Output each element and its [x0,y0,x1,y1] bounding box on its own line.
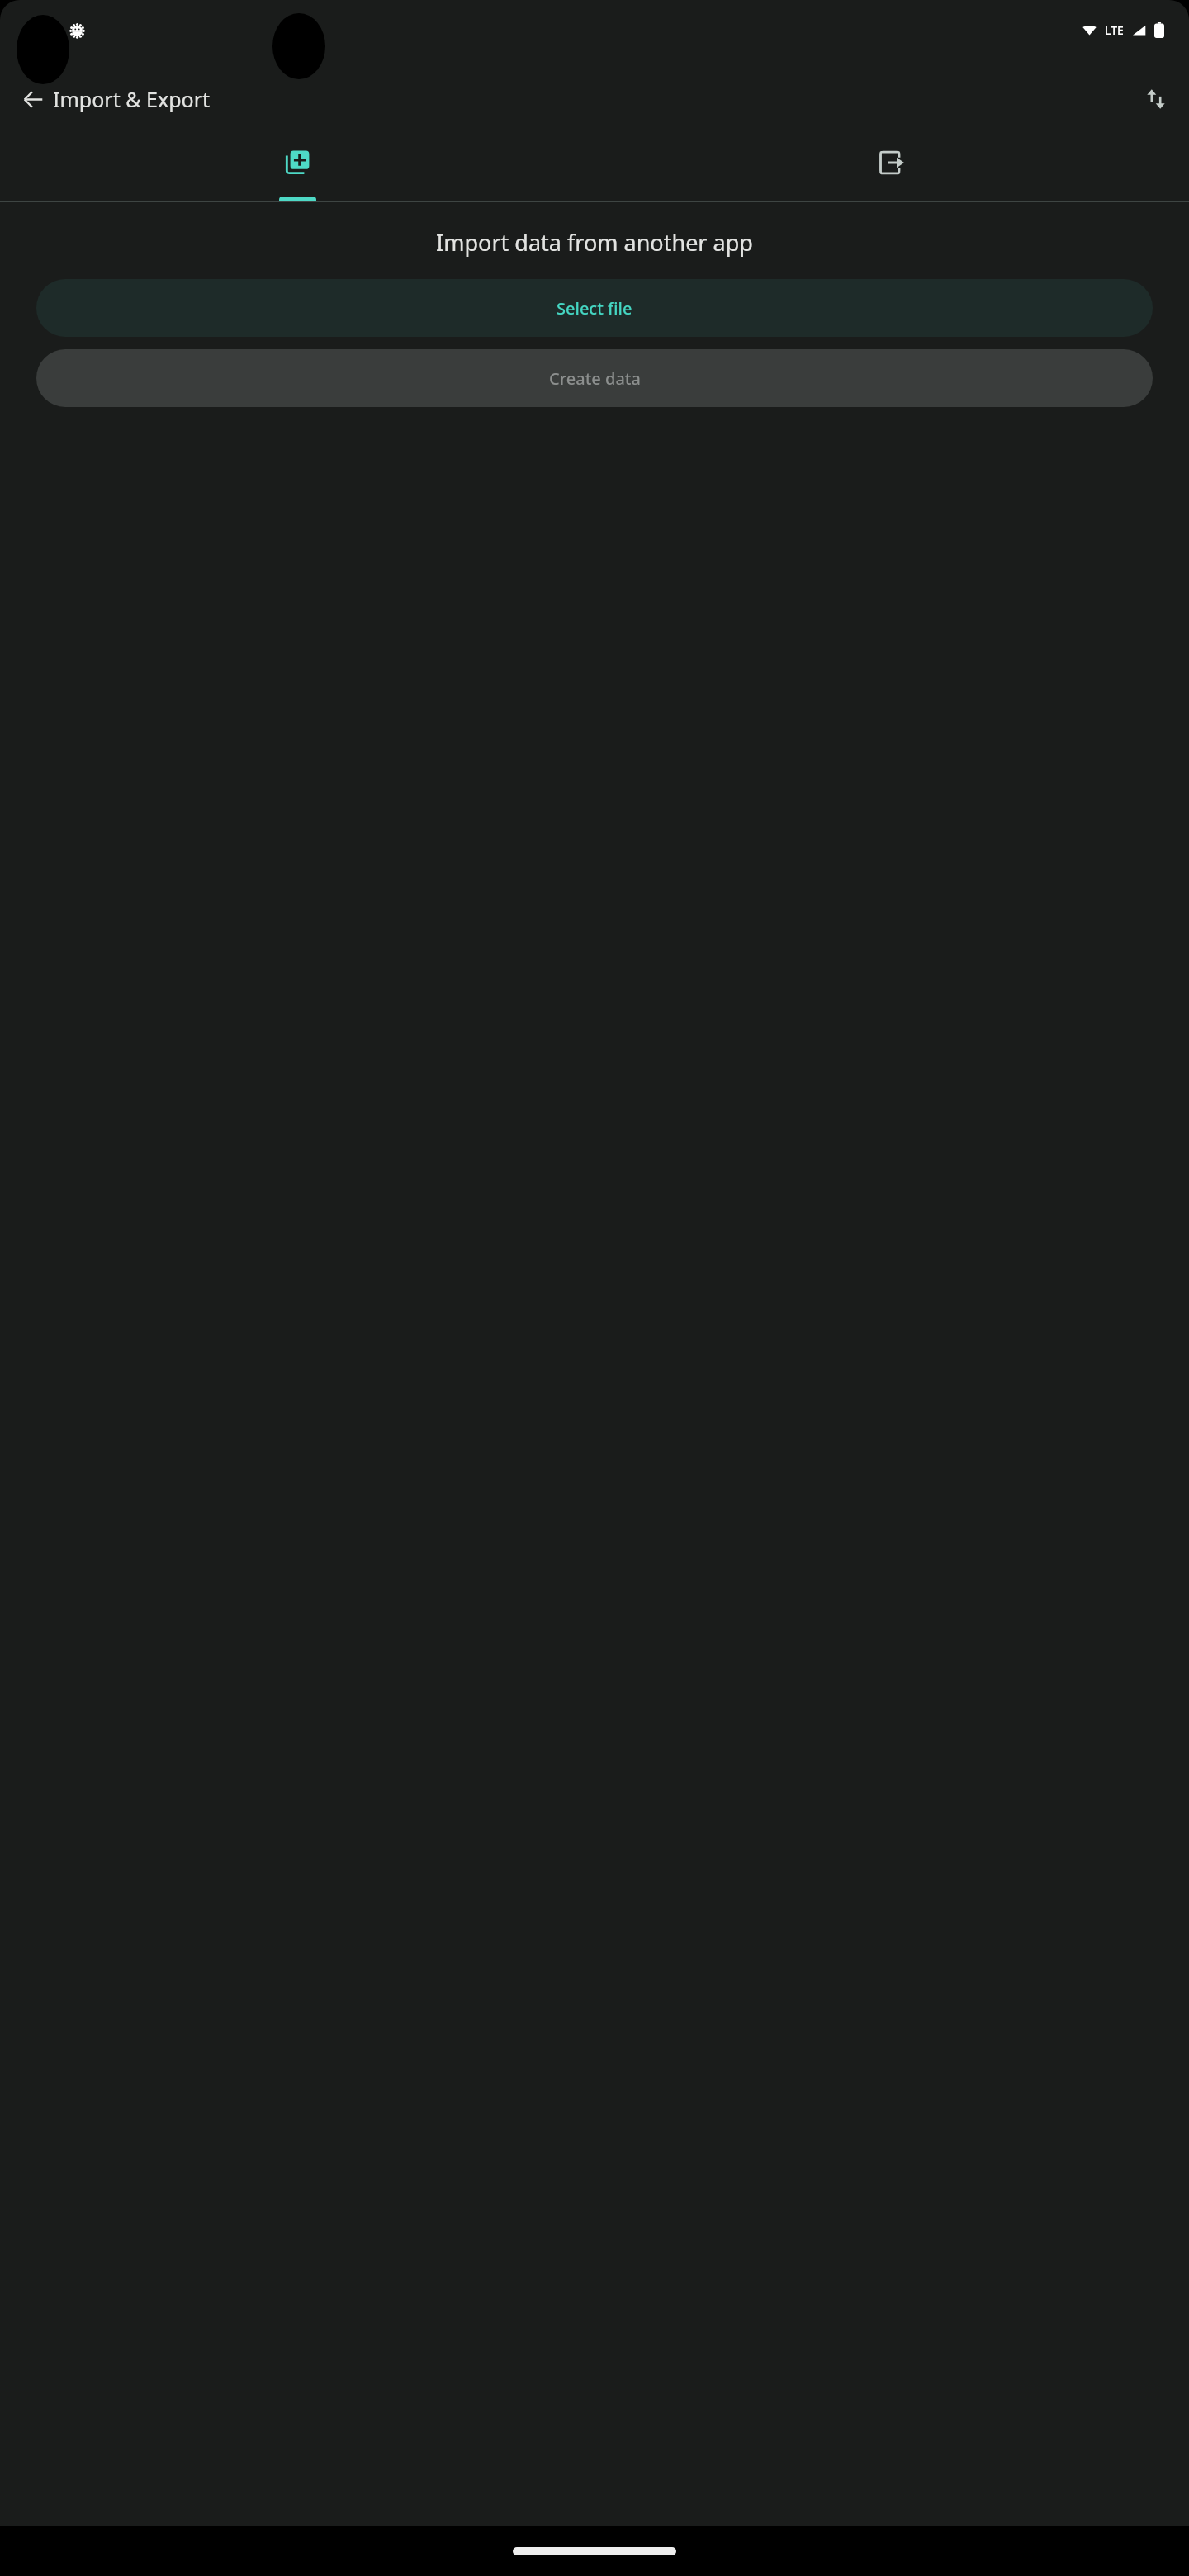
button[interactable]: Navigate up [10,76,56,122]
button[interactable]: Select file [36,279,1153,337]
staticText: Select file [557,297,632,320]
staticText: 1:00 [35,21,63,40]
staticText: LTE [1105,22,1124,38]
button[interactable]: Import tab, selected [0,139,594,202]
staticText: Import & Export [53,85,210,113]
button[interactable]: Export tab [594,139,1189,202]
button[interactable]: Swap import and export [1133,76,1179,122]
staticText: Create data [549,367,641,390]
staticText: Import data from another app [36,227,1153,258]
button[interactable]: Create data [36,349,1153,407]
